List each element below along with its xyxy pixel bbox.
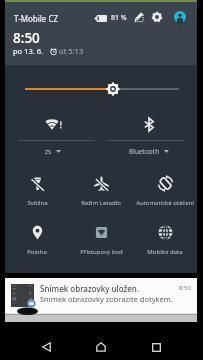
button[interactable]: User profile <box>174 11 186 23</box>
button[interactable]: Brightness <box>5 74 197 104</box>
button[interactable]: Recent apps <box>142 333 170 360</box>
staticText: Mobilní data <box>147 248 183 256</box>
staticText: 81 % <box>111 13 127 23</box>
staticText: zs <box>45 147 52 156</box>
button[interactable]: Edit quick settings <box>134 12 144 22</box>
button[interactable]: Home <box>87 333 115 360</box>
button[interactable]: Přístupový bod <box>69 219 133 265</box>
button[interactable]: Svítilna <box>5 170 69 216</box>
button[interactable]: Snímek obrazovky uložen. <box>5 278 197 313</box>
button[interactable] <box>5 313 197 322</box>
button[interactable]: Settings <box>151 11 163 23</box>
button[interactable]: Automatické otáčení <box>133 170 197 216</box>
staticText: Režim Letadlo <box>81 199 121 207</box>
staticText: po 13. 6. <box>13 46 43 56</box>
button[interactable]: Back <box>32 333 60 360</box>
staticText: T-Mobile CZ <box>14 13 59 24</box>
staticText: Automatické otáčení <box>136 199 194 207</box>
staticText: Přístupový bod <box>80 248 123 256</box>
staticText: út 5:13 <box>59 46 84 56</box>
staticText: Snímek obrazovky zobrazíte dotykem. <box>40 294 173 304</box>
button[interactable]: Poloha <box>5 219 69 265</box>
button[interactable]: Režim Letadlo <box>69 170 133 216</box>
staticText: Snímek obrazovky uložen. <box>40 283 140 294</box>
button[interactable]: Bluetooth <box>101 109 197 164</box>
staticText: Svítilna <box>27 199 48 207</box>
staticText: 8:50 <box>13 29 40 47</box>
staticText: Poloha <box>27 248 47 256</box>
button[interactable]: zs <box>5 109 101 164</box>
staticText: Bluetooth <box>129 147 160 156</box>
staticText: 8:50 <box>179 284 191 292</box>
button[interactable]: Mobilní data <box>133 219 197 265</box>
